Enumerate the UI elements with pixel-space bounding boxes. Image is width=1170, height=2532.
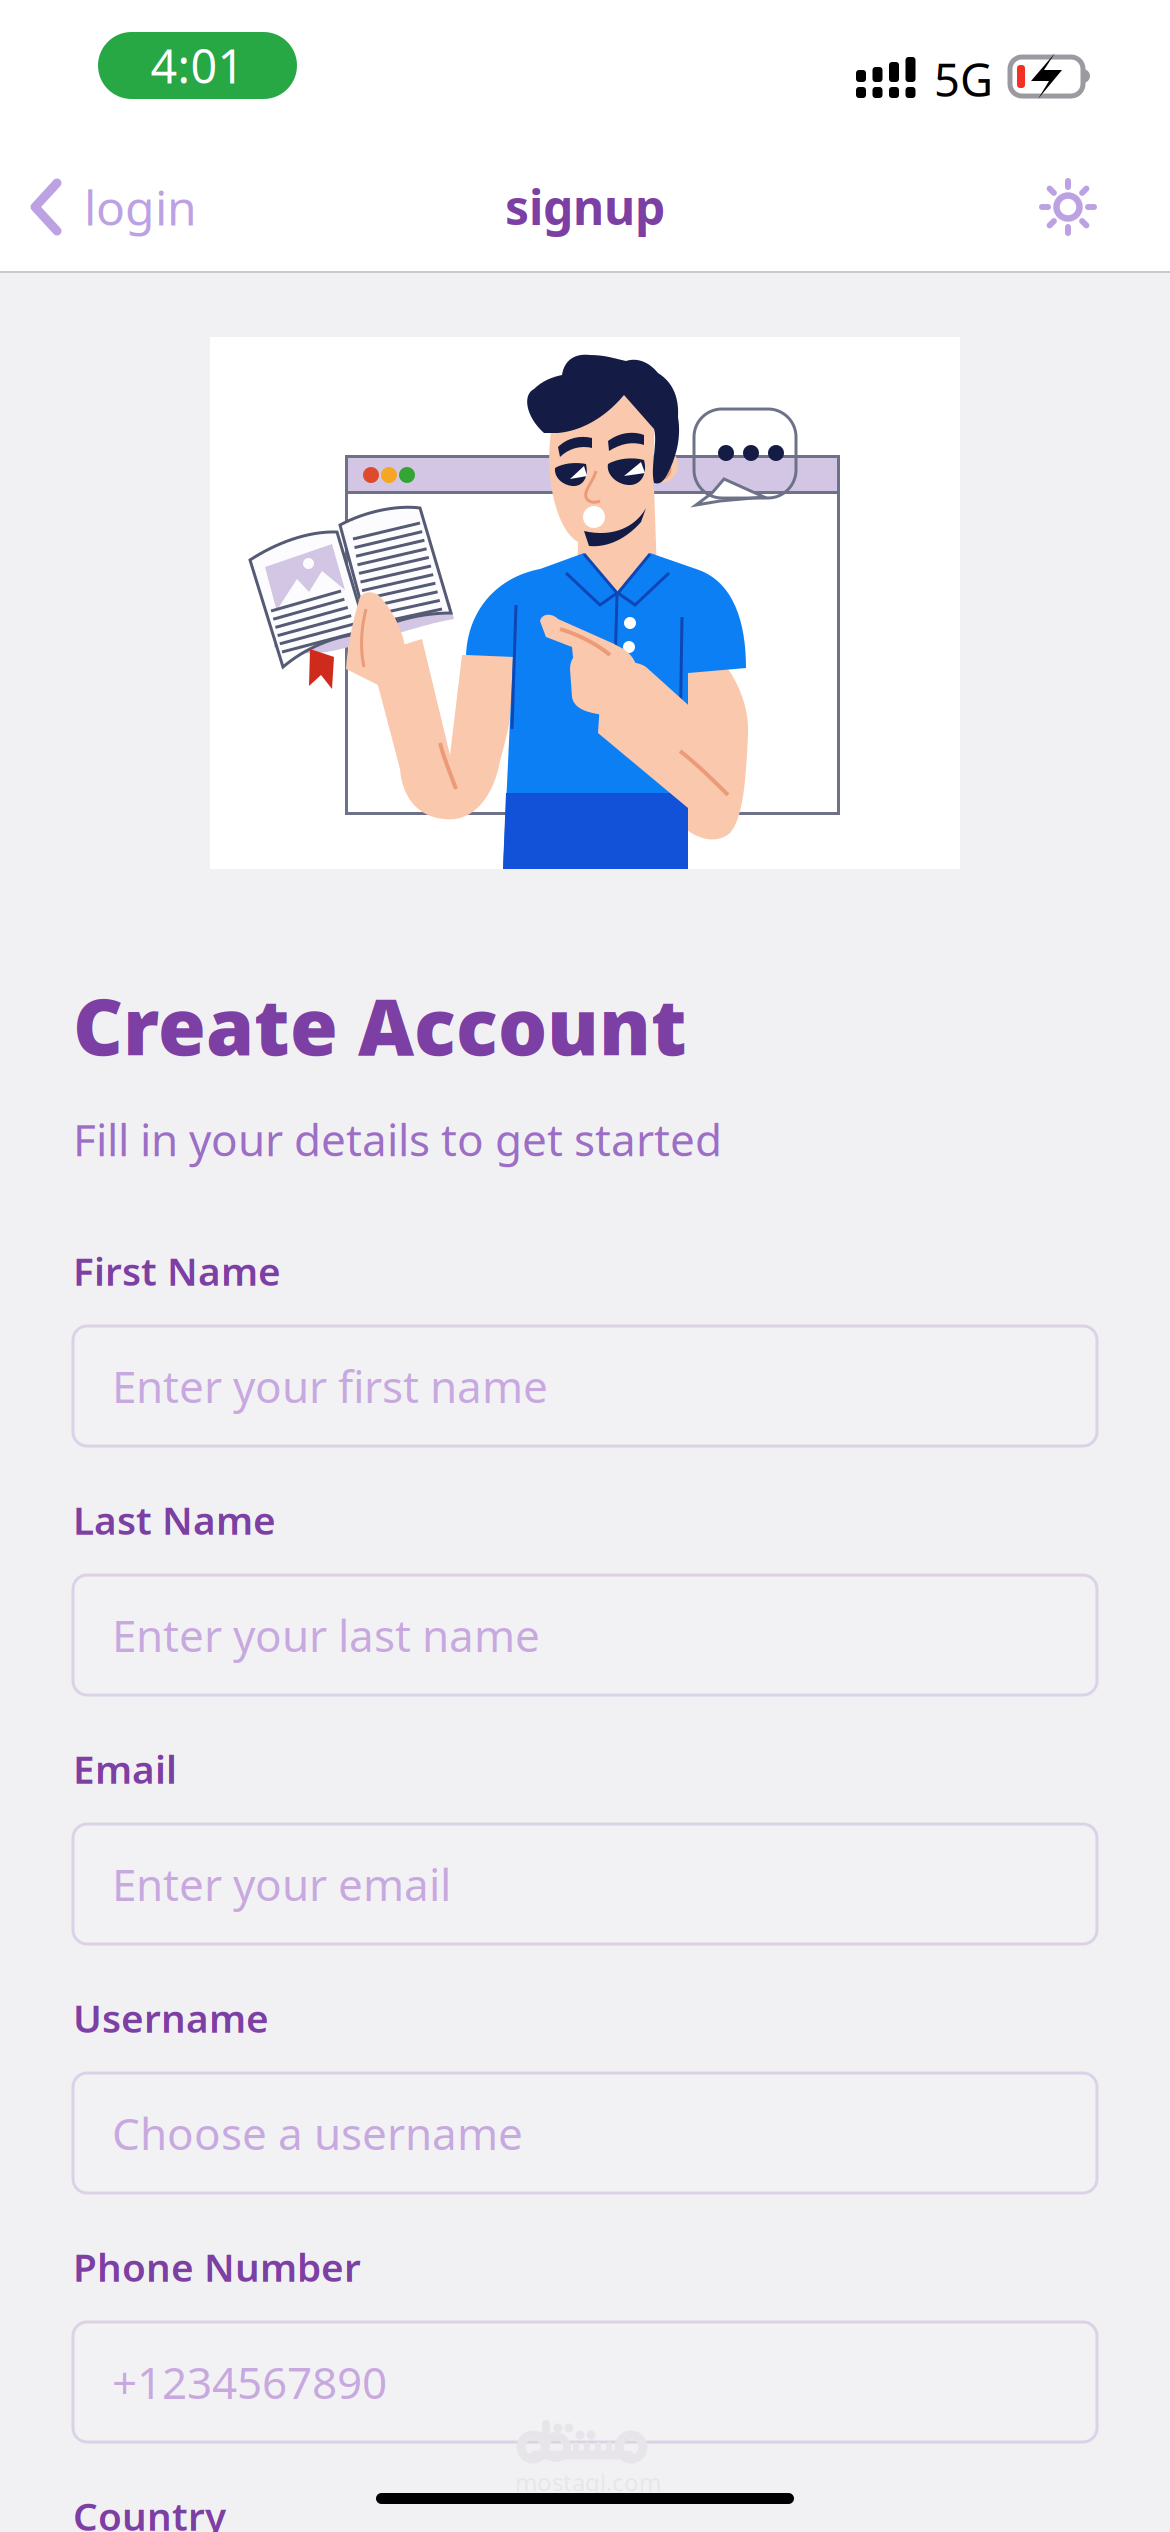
staticText: mostaql.com [515,2466,661,2498]
staticText: Enter your last name [112,1606,540,1664]
staticText: Username [73,1992,269,2043]
staticText: Phone Number [73,2241,361,2292]
button[interactable]: Enter your email [73,1824,1097,1944]
staticText: login [84,175,197,239]
staticText: Country [73,2490,226,2532]
button[interactable]: +1234567890 [73,2322,1097,2442]
button[interactable]: Enter your first name [73,1326,1097,1446]
staticText: 5G [934,49,993,109]
staticText: Enter your email [112,1855,451,1913]
staticText: Enter your first name [112,1357,548,1415]
staticText: Choose a username [112,2104,523,2162]
staticText: +1234567890 [112,2353,387,2411]
staticText: Last Name [73,1494,276,1545]
staticText: Email [73,1743,177,1794]
staticText: First Name [73,1245,281,1296]
button[interactable]: Toggle appearance [1013,152,1123,262]
staticText: 4:01 [150,34,244,96]
staticText: Create Account [73,974,687,1077]
staticText: Fill in your details to get started [73,1110,722,1168]
staticText: signup [505,175,665,238]
button[interactable]: Enter your last name [73,1575,1097,1695]
button[interactable]: Choose a username [73,2073,1097,2193]
button[interactable]: login [0,152,231,262]
